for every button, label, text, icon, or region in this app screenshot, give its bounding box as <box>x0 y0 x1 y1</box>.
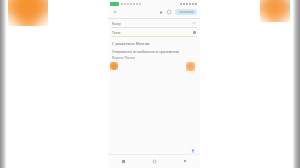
button[interactable]: Attach <box>158 9 164 15</box>
button[interactable] <box>175 9 197 15</box>
button[interactable]: Кому <box>108 19 200 28</box>
button[interactable]: Back <box>180 156 190 166</box>
staticText: Тема <box>112 30 121 35</box>
button[interactable]: Тема <box>108 28 200 37</box>
button[interactable]: Home <box>149 156 159 166</box>
staticText: Яндекс Почты <box>112 55 136 60</box>
button[interactable]: Back <box>111 8 118 15</box>
staticText: Отправлено из мобильного приложения <box>112 49 180 54</box>
button[interactable]: More options <box>166 9 172 15</box>
staticText: Кому <box>112 21 121 26</box>
button[interactable]: Menu <box>118 156 128 166</box>
staticText: С уважением Максим <box>112 41 150 46</box>
button[interactable]: Voice input <box>188 146 197 155</box>
